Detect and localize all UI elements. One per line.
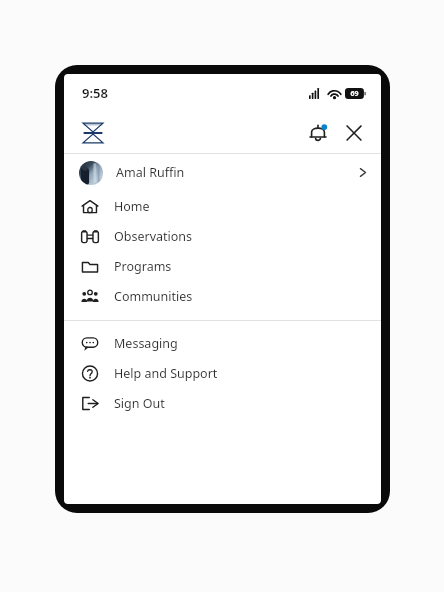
button[interactable]: Home	[64, 191, 381, 221]
button[interactable]: Close	[337, 116, 371, 150]
button[interactable]: Amal Ruffin	[64, 154, 381, 191]
button[interactable]: Help and Support	[64, 358, 381, 388]
staticText: Observations	[114, 228, 193, 245]
staticText: Help and Support	[114, 365, 218, 382]
staticText: Home	[114, 198, 150, 215]
staticText: Amal Ruffin	[116, 164, 185, 181]
staticText: Sign Out	[114, 395, 165, 412]
staticText: 9:58	[82, 84, 108, 102]
staticText: Programs	[114, 258, 172, 275]
button[interactable]: Observations	[64, 221, 381, 251]
button[interactable]: Communities	[64, 281, 381, 311]
staticText: Messaging	[114, 335, 178, 352]
staticText: Communities	[114, 288, 193, 305]
button[interactable]: Notifications	[301, 116, 335, 150]
button[interactable]: Programs	[64, 251, 381, 281]
button[interactable]: App logo	[78, 118, 108, 148]
button[interactable]: Sign Out	[64, 388, 381, 418]
staticText: 69	[350, 89, 359, 99]
button[interactable]: Messaging	[64, 328, 381, 358]
